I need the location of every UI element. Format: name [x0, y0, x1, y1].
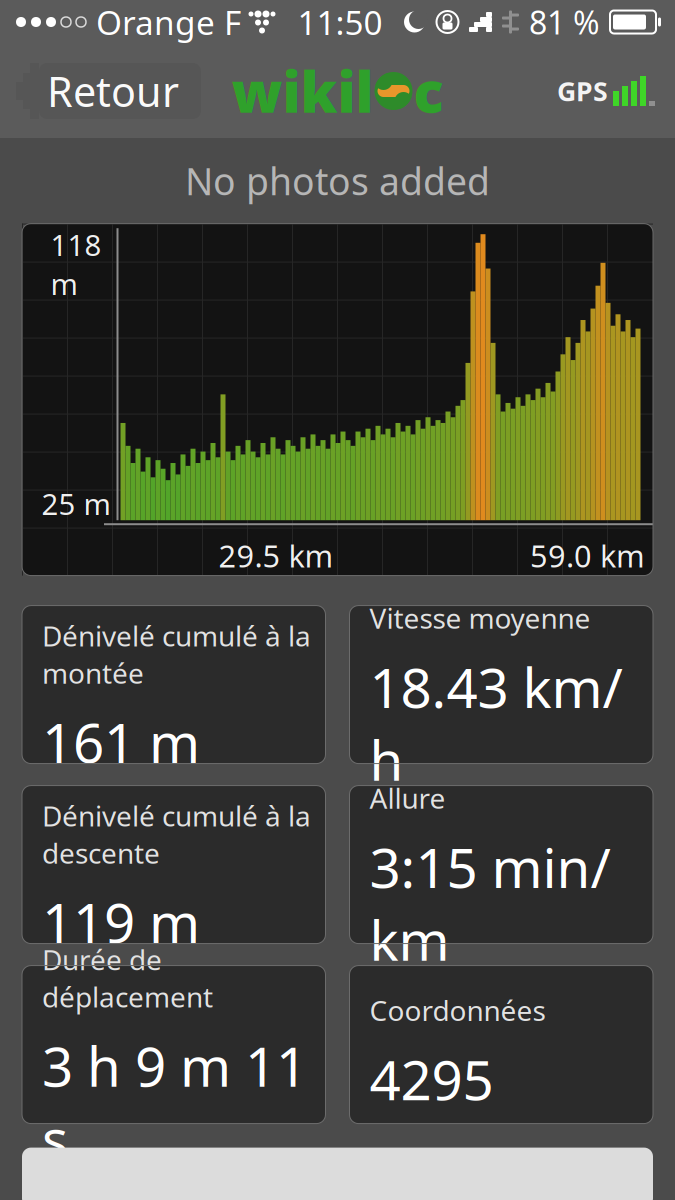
button[interactable]: Retour — [16, 63, 201, 119]
staticText: 3 h 9 m 11 s — [42, 1029, 307, 1174]
staticText: 25 m — [41, 484, 110, 523]
staticText: 4295 — [369, 1043, 493, 1115]
staticText: 3:15 min/km — [369, 831, 610, 976]
staticText: No photos added — [185, 156, 490, 206]
button[interactable]: Dénivelé cumulé à la montée — [22, 606, 325, 764]
staticText: 11:50 — [297, 0, 382, 44]
button[interactable]: Dénivelé cumulé à la descente — [22, 786, 325, 944]
button[interactable]: Durée de déplacement — [22, 966, 325, 1124]
staticText: wikil — [231, 54, 373, 128]
staticText: c — [413, 54, 443, 128]
button[interactable]: GPS signal strength — [557, 73, 655, 109]
staticText: 119 m — [42, 885, 200, 958]
staticText: 29.5 km — [218, 535, 333, 576]
button[interactable]: Coordonnées — [349, 966, 653, 1124]
staticText: 161 m — [42, 705, 200, 778]
staticText: Dénivelé cumulé à la montée — [42, 617, 311, 691]
staticText: 118 m — [50, 225, 101, 303]
button[interactable]: Vitesse moyenne — [349, 606, 653, 764]
staticText: Dénivelé cumulé à la descente — [42, 797, 311, 871]
staticText: Allure — [369, 779, 445, 817]
staticText: 59.0 km — [530, 535, 645, 576]
staticText: Retour — [47, 64, 179, 118]
staticText: GPS — [557, 73, 608, 109]
staticText: Orange F — [96, 0, 241, 44]
staticText: 18.43 km/h — [369, 651, 622, 796]
staticText: Vitesse moyenne — [369, 599, 590, 637]
staticText: Coordonnées — [369, 992, 545, 1029]
button[interactable]: Allure — [349, 786, 653, 944]
staticText: 81 % — [529, 1, 600, 43]
staticText: Durée de déplacement — [42, 941, 213, 1015]
